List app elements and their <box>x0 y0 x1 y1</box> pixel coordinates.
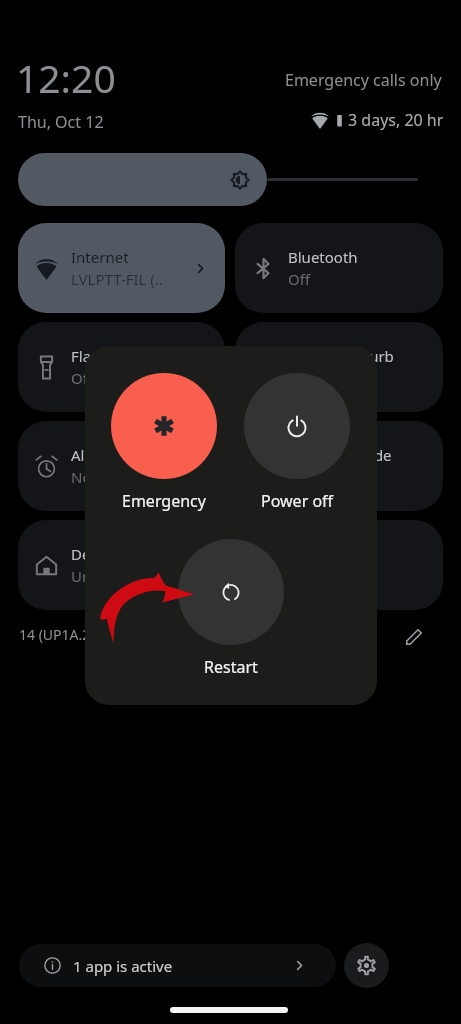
staticText: Airplane mode <box>288 445 392 465</box>
button[interactable]: Device controls <box>18 520 225 610</box>
staticText: Do Not Disturb <box>288 346 394 366</box>
button[interactable]: Flashlight <box>18 322 225 412</box>
staticText: Internet <box>71 247 129 267</box>
staticText: Emergency <box>122 490 206 512</box>
button[interactable]: Edit tiles <box>396 619 432 655</box>
staticText: Off <box>288 368 311 388</box>
button[interactable]: 1 app is active <box>19 944 336 987</box>
staticText: Emergency calls only <box>285 69 442 91</box>
staticText: 14 (UP1A.231005.007) <box>19 625 163 644</box>
staticText: Off <box>71 368 94 388</box>
button[interactable]: Emergency <box>111 373 217 512</box>
staticText: Thu, Oct 12 <box>18 111 104 133</box>
button[interactable]: Alarm <box>18 421 225 511</box>
staticText: LVLPTT-FIL (.. <box>71 269 163 289</box>
staticText: Off <box>288 467 311 487</box>
button[interactable]: Power off <box>244 373 350 512</box>
staticText: 12:20 <box>16 51 116 104</box>
button[interactable]: Settings <box>344 943 389 988</box>
button[interactable]: Airplane mode <box>235 421 443 511</box>
button[interactable]: Internet <box>18 223 225 313</box>
staticText: Power off <box>261 490 334 512</box>
staticText: 3 days, 20 hr <box>348 109 444 131</box>
button[interactable]: Bluetooth <box>235 223 443 313</box>
button[interactable]: Restart <box>178 539 284 678</box>
staticText: None set <box>71 467 135 487</box>
staticText: Alarm <box>71 445 114 465</box>
staticText: Off <box>288 269 311 289</box>
staticText: Device controls <box>71 544 179 564</box>
staticText: Flashlight <box>71 346 140 366</box>
button[interactable]: Screen Cast <box>235 520 443 610</box>
button[interactable]: Do Not Disturb <box>235 322 443 412</box>
staticText: Bluetooth <box>288 247 358 267</box>
staticText: Restart <box>204 656 258 678</box>
button[interactable]: Brightness <box>18 153 267 206</box>
staticText: 1 app is active <box>73 956 173 976</box>
staticText: Unavailable <box>71 566 154 586</box>
